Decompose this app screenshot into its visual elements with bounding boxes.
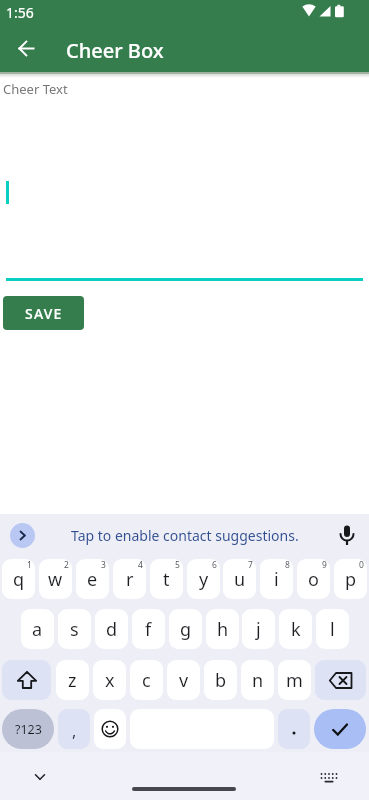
button[interactable]: x	[93, 660, 126, 700]
button[interactable]: f	[132, 609, 165, 649]
staticText: p	[345, 567, 357, 592]
staticText: i	[274, 567, 279, 592]
button[interactable]: e	[76, 559, 109, 599]
staticText: t	[163, 567, 170, 592]
staticText: n	[252, 668, 264, 693]
button[interactable]: o	[297, 559, 330, 599]
staticText: o	[308, 567, 319, 592]
staticText: 5	[175, 559, 180, 571]
button[interactable]: p	[334, 559, 367, 599]
button[interactable]: l	[316, 609, 349, 649]
button[interactable]: n	[241, 660, 274, 700]
staticText: Cheer Box	[66, 37, 164, 64]
button[interactable]: ?123	[2, 709, 54, 749]
staticText: 9	[322, 559, 327, 571]
staticText: g	[180, 617, 192, 642]
staticText: ,	[72, 720, 77, 742]
button[interactable]: m	[278, 660, 311, 700]
button[interactable]: d	[95, 609, 128, 649]
staticText: 4	[138, 559, 143, 571]
staticText: j	[256, 617, 261, 642]
staticText: w	[48, 567, 63, 592]
button[interactable]: v	[167, 660, 200, 700]
staticText: b	[215, 668, 227, 693]
button[interactable]: z	[56, 660, 89, 700]
staticText: q	[13, 567, 25, 592]
button[interactable]: y	[187, 559, 220, 599]
button[interactable]	[278, 709, 310, 749]
button[interactable]: c	[130, 660, 163, 700]
button[interactable]: j	[242, 609, 275, 649]
staticText: l	[330, 617, 335, 642]
staticText: r	[126, 567, 134, 592]
staticText: f	[145, 617, 152, 642]
button[interactable]: u	[223, 559, 256, 599]
button[interactable]	[2, 660, 51, 700]
staticText: x	[105, 668, 115, 693]
button[interactable]: b	[204, 660, 237, 700]
button[interactable]	[94, 709, 126, 749]
staticText: 0	[359, 559, 364, 571]
staticText: 7	[248, 559, 253, 571]
button[interactable]: ,	[58, 709, 90, 749]
staticText: 3	[101, 559, 106, 571]
staticText: m	[286, 668, 303, 693]
staticText: v	[179, 668, 189, 693]
button[interactable]: g	[169, 609, 202, 649]
staticText: h	[217, 617, 229, 642]
staticText: Tap to enable contact suggestions.	[71, 526, 299, 545]
button[interactable]: w	[39, 559, 72, 599]
staticText: k	[291, 617, 301, 642]
staticText: u	[234, 567, 246, 592]
button[interactable]	[10, 523, 35, 548]
button[interactable]	[339, 525, 355, 549]
staticText: SAVE	[25, 304, 63, 323]
button[interactable]: a	[21, 609, 54, 649]
staticText: e	[87, 567, 98, 592]
button[interactable]: k	[279, 609, 312, 649]
button[interactable]: q	[2, 559, 35, 599]
button[interactable]: i	[260, 559, 293, 599]
staticText: 8	[285, 559, 290, 571]
staticText: ?123	[15, 721, 42, 738]
staticText: z	[68, 668, 77, 693]
button[interactable]: h	[206, 609, 239, 649]
staticText: c	[142, 668, 151, 693]
staticText: 6	[212, 559, 217, 571]
button[interactable]	[35, 774, 45, 780]
button[interactable]: SAVE	[3, 296, 84, 330]
button[interactable]	[315, 660, 366, 700]
staticText: 1:56	[6, 3, 34, 22]
staticText: s	[70, 617, 79, 642]
button[interactable]: t	[150, 559, 183, 599]
staticText: a	[32, 617, 43, 642]
button[interactable]	[320, 772, 338, 782]
button[interactable]	[314, 709, 366, 749]
staticText: 2	[64, 559, 69, 571]
staticText: d	[106, 617, 118, 642]
staticText: 1	[27, 559, 32, 571]
button[interactable]: s	[58, 609, 91, 649]
button[interactable]	[19, 41, 34, 56]
button[interactable]: r	[113, 559, 146, 599]
staticText: Cheer Text	[3, 80, 68, 98]
staticText: y	[199, 567, 209, 592]
